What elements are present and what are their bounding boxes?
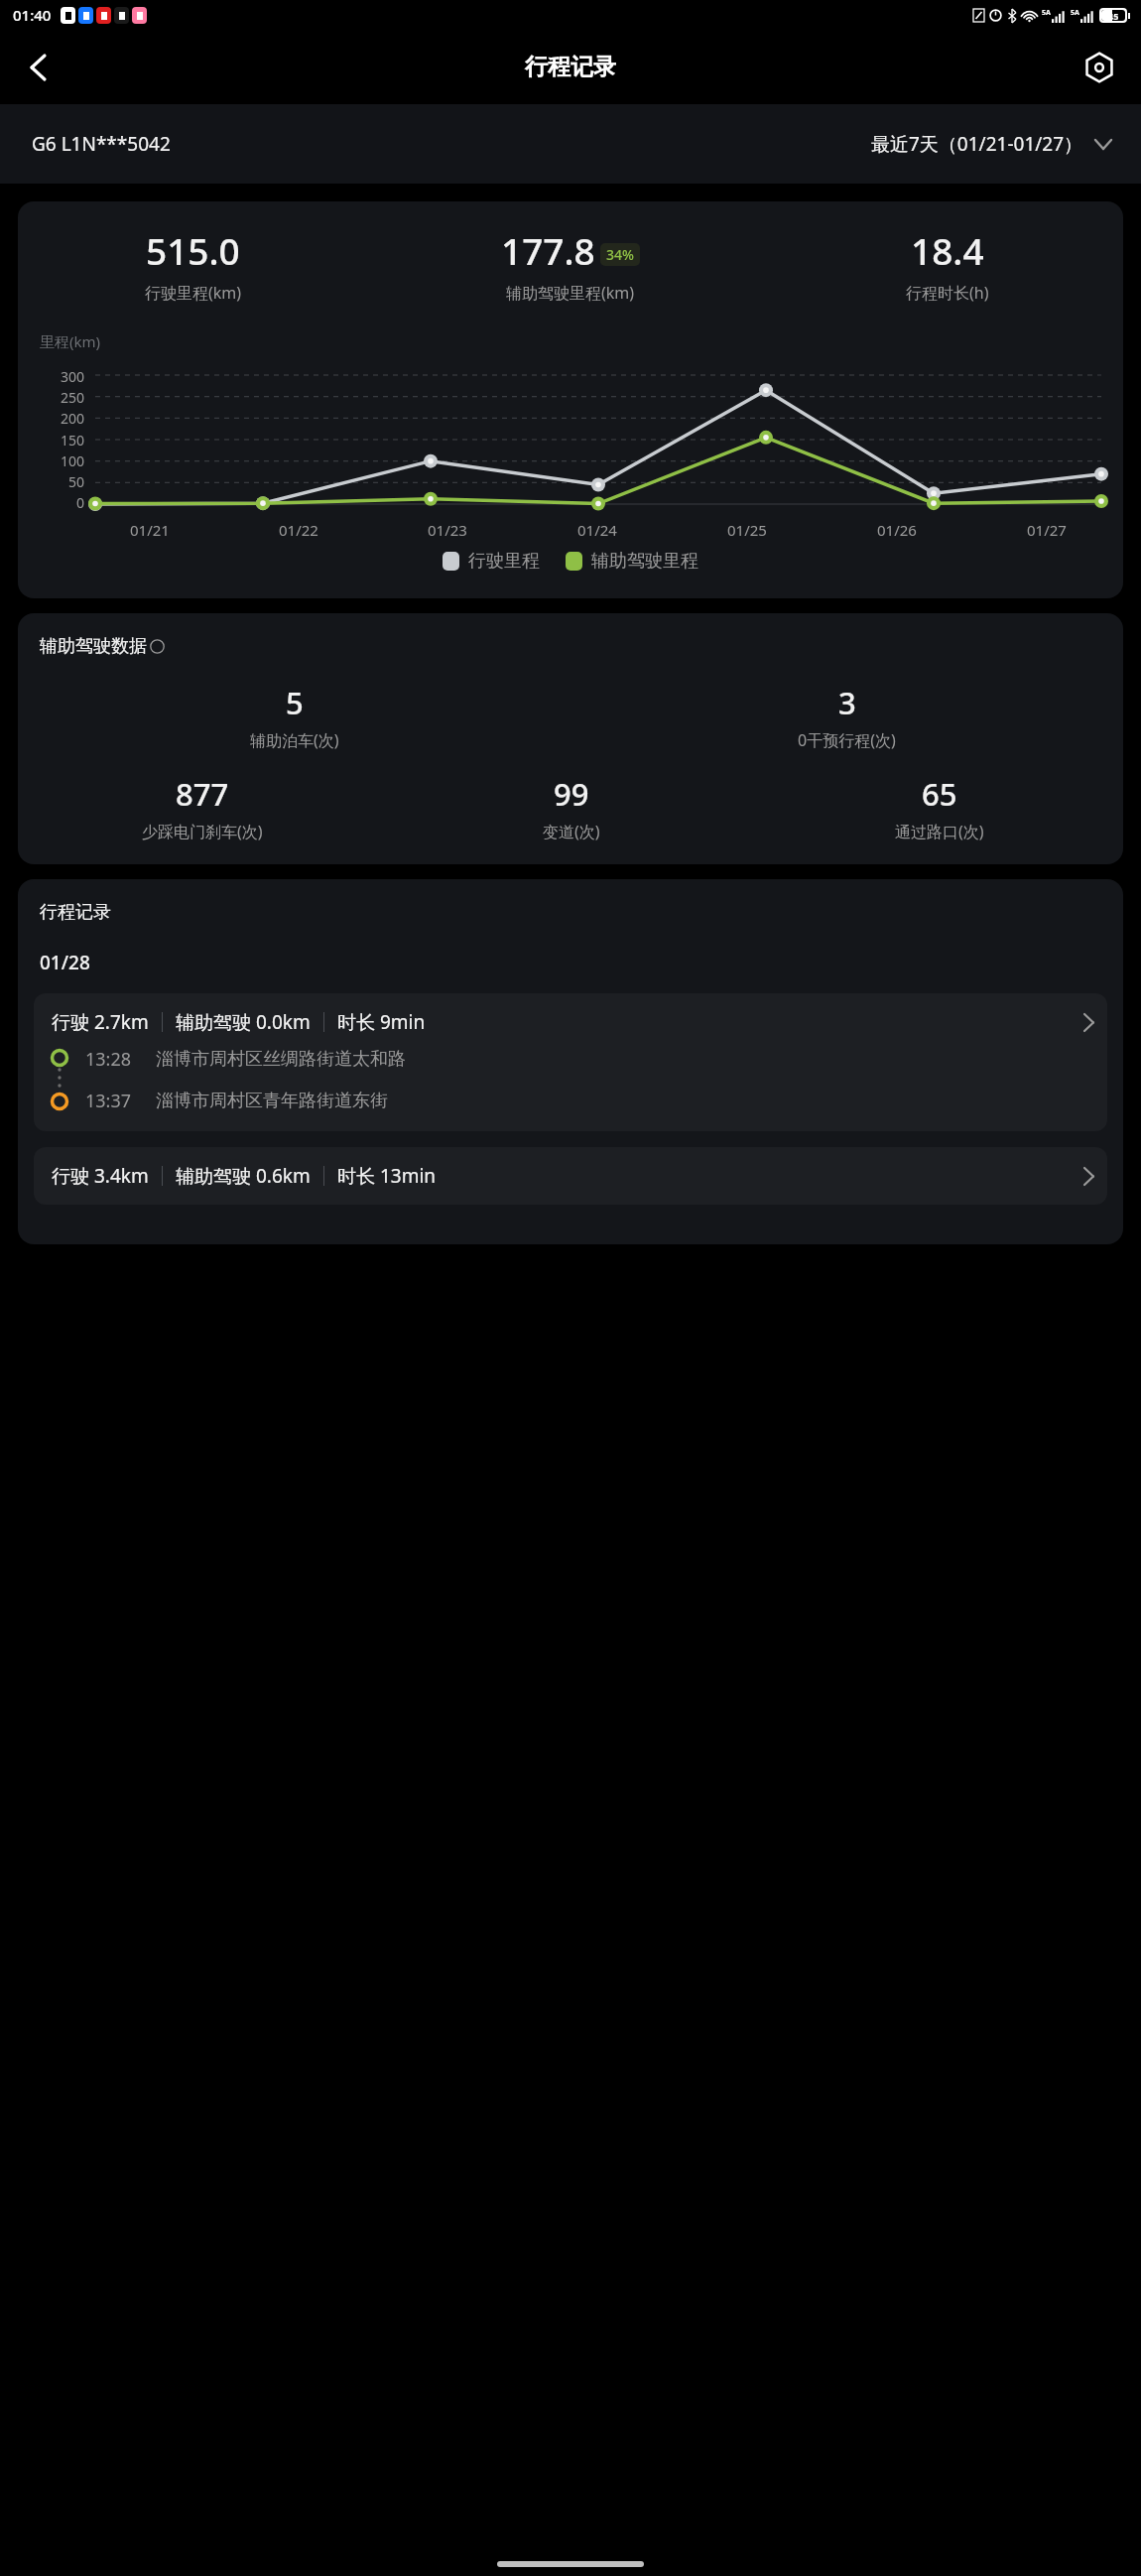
button[interactable]: Settings [1074,42,1125,93]
staticText: 行程时长(h) [906,282,989,304]
staticText: 300 [61,367,85,386]
button[interactable]: Back [10,40,65,95]
staticText: 最近7天（01/21-01/27） [871,131,1083,157]
button[interactable]: 辅助驾驶数据 [40,635,165,658]
button[interactable]: 行驶 3.4km [34,1147,1107,1205]
staticText: 5 [286,682,304,723]
staticText: 34% [606,245,634,264]
staticText: 5A [1071,8,1079,18]
staticText: 辅助驾驶里程(km) [506,282,635,304]
staticText: 辅助驾驶 0.6km [176,1163,311,1189]
staticText: 5A [1042,8,1051,18]
staticText: 01/27 [1027,520,1067,540]
staticText: 250 [61,388,85,407]
staticText: 0干预行程(次) [798,729,896,751]
staticText: 少踩电门刹车(次) [142,821,263,842]
staticText: 行驶里程(km) [145,282,242,304]
staticText: G6 L1N***5042 [32,131,171,157]
staticText: 100 [61,451,85,470]
staticText: 45 [1108,10,1119,21]
staticText: 515.0 [146,225,240,275]
staticText: 50 [68,472,85,491]
staticText: 99 [554,773,589,815]
button[interactable]: 最近7天（01/21-01/27） [871,131,1111,157]
staticText: 辅助泊车(次) [250,729,339,751]
staticText: 01/26 [877,520,917,540]
staticText: 13:37 [85,1089,132,1113]
staticText: 通过路口(次) [895,821,984,842]
staticText: 65 [922,773,957,815]
staticText: 变道(次) [543,821,600,842]
staticText: 01/24 [577,520,617,540]
staticText: 13:28 [85,1047,132,1072]
staticText: 里程(km) [40,331,101,351]
staticText: 01/23 [428,520,467,540]
staticText: 辅助驾驶里程 [591,550,698,573]
staticText: 时长 13min [337,1163,437,1189]
staticText: 0 [76,493,85,512]
staticText: 177.8 [501,225,595,275]
staticText: 01/28 [40,950,90,975]
staticText: 淄博市周村区丝绸路街道太和路 [156,1048,406,1071]
staticText: 辅助驾驶数据 [40,635,147,658]
staticText: 行程记录 [525,53,616,81]
staticText: 淄博市周村区青年路街道东街 [156,1090,388,1112]
staticText: 01/22 [279,520,318,540]
staticText: 200 [61,409,85,428]
staticText: 时长 9min [337,1009,426,1035]
staticText: 18.4 [911,225,984,275]
staticText: 150 [61,431,85,450]
staticText: 行驶 2.7km [52,1009,149,1035]
staticText: 辅助驾驶 0.0km [176,1009,311,1035]
button[interactable]: 行驶 2.7km [34,993,1107,1131]
staticText: 3 [838,682,856,723]
staticText: 行程记录 [40,901,111,924]
staticText: 行驶 3.4km [52,1163,149,1189]
staticText: 01/25 [727,520,767,540]
staticText: 877 [176,773,229,815]
staticText: 01:40 [13,5,52,25]
staticText: 01/21 [130,520,170,540]
staticText: 行驶里程 [468,550,540,573]
